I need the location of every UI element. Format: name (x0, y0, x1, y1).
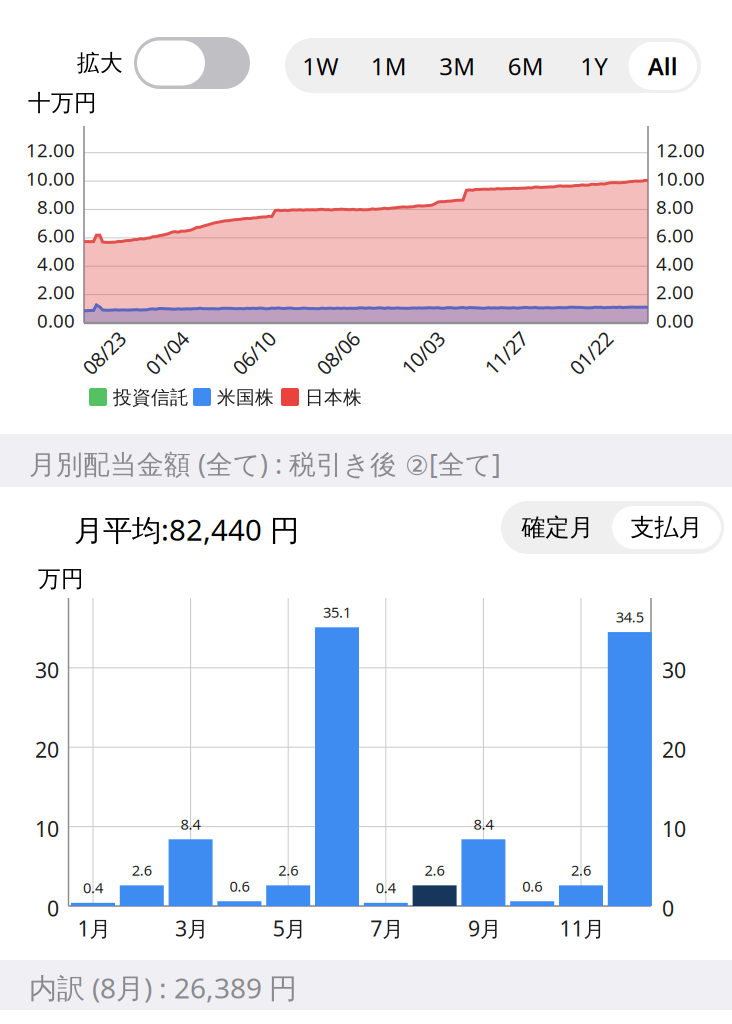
staticText: 6.00 (656, 223, 694, 248)
staticText: 8.4 (181, 814, 201, 834)
staticText: 8.00 (656, 194, 694, 219)
staticText: 拡大 (77, 49, 123, 77)
staticText: 30 (662, 656, 686, 684)
staticText: 1月 (77, 914, 110, 942)
staticText: 0.4 (83, 878, 103, 897)
staticText: 確定月 (521, 513, 593, 542)
button[interactable]: 6M (491, 42, 560, 90)
staticText: 01/22 (565, 340, 616, 366)
staticText: 2.00 (37, 280, 75, 304)
staticText: 0.00 (656, 308, 694, 333)
button[interactable]: 1M (354, 42, 423, 90)
staticText: 月別配当金額 (全て) : 税引き後 ②[全て] (29, 446, 501, 481)
staticText: 投資信託 (113, 386, 189, 409)
staticText: 月平均:82,440 円 (74, 510, 299, 549)
staticText: 8.4 (473, 814, 493, 834)
button[interactable]: 支払月 (612, 506, 721, 549)
staticText: 7月 (370, 914, 403, 942)
staticText: 12.00 (656, 138, 705, 162)
staticText: 08/23 (78, 340, 129, 366)
staticText: 2.6 (132, 860, 152, 880)
staticText: 2.6 (571, 860, 591, 880)
staticText: 万円 (38, 565, 84, 593)
staticText: 十万円 (28, 89, 97, 117)
staticText: 08/06 (312, 340, 363, 366)
staticText: 10/03 (397, 340, 448, 366)
staticText: 10.00 (26, 166, 75, 191)
staticText: 35.1 (323, 602, 351, 622)
staticText: 4.00 (37, 251, 75, 276)
staticText: 1M (371, 50, 407, 82)
staticText: 3月 (175, 914, 208, 942)
button[interactable]: 確定月 (503, 506, 612, 549)
staticText: 5月 (273, 914, 306, 942)
staticText: 6.00 (37, 223, 75, 248)
staticText: 11/27 (480, 340, 531, 366)
staticText: 30 (35, 656, 59, 684)
staticText: 0.6 (522, 876, 542, 896)
staticText: 0.6 (229, 876, 249, 896)
staticText: 10 (662, 815, 686, 843)
staticText: 11月 (559, 914, 604, 942)
staticText: 0.00 (37, 308, 75, 333)
staticText: 1W (302, 50, 338, 82)
staticText: 20 (35, 735, 59, 763)
staticText: 6M (508, 50, 544, 82)
button[interactable]: 拡大 (134, 37, 250, 89)
staticText: 1Y (580, 50, 608, 82)
button[interactable]: All (628, 42, 697, 90)
staticText: 3M (439, 50, 475, 82)
staticText: 01/04 (141, 340, 192, 366)
staticText: 34.5 (616, 607, 644, 627)
staticText: 支払月 (630, 513, 702, 542)
button[interactable]: 1Y (560, 42, 628, 90)
staticText: 9月 (468, 914, 501, 942)
button[interactable]: 1W (286, 42, 354, 90)
staticText: 2.6 (278, 860, 298, 880)
staticText: 8.00 (37, 194, 75, 219)
staticText: 4.00 (656, 251, 694, 276)
staticText: 06/10 (228, 340, 279, 366)
staticText: 0 (47, 894, 59, 922)
staticText: 10.00 (656, 166, 705, 191)
staticText: All (648, 50, 678, 82)
staticText: 2.6 (425, 860, 445, 880)
staticText: 2.00 (656, 280, 694, 304)
staticText: 日本株 (305, 386, 362, 409)
button[interactable]: 3M (423, 42, 491, 90)
staticText: 0.4 (376, 878, 396, 897)
staticText: 0 (662, 894, 674, 922)
staticText: 12.00 (26, 138, 75, 162)
staticText: 10 (35, 815, 59, 843)
staticText: 内訳 (8月) : 26,389 円 (29, 969, 297, 1006)
staticText: 20 (662, 735, 686, 763)
staticText: 米国株 (217, 386, 274, 409)
